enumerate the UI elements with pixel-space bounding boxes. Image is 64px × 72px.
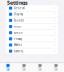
staticText: Wallet (14, 43, 22, 47)
staticText: > (54, 43, 56, 47)
staticText: Battery (14, 49, 23, 53)
staticText: Tab (6, 68, 10, 71)
staticText: > (54, 49, 56, 53)
staticText: Sounds (14, 19, 24, 22)
button[interactable]: Tab (16, 64, 32, 71)
staticText: > (54, 12, 56, 16)
staticText: > (54, 19, 56, 22)
button[interactable]: Tab (32, 64, 48, 71)
staticText: > (54, 25, 56, 28)
staticText: > (54, 37, 56, 41)
staticText: Display (14, 12, 23, 16)
staticText: Focus (14, 25, 21, 28)
button[interactable]: Tab (48, 64, 64, 71)
staticText: General (14, 6, 25, 10)
staticText: Tab (38, 68, 42, 71)
staticText: Tab (54, 68, 58, 71)
staticText: > (54, 31, 56, 34)
staticText: Privacy (14, 37, 22, 41)
staticText: Screen (14, 31, 23, 34)
staticText: Settings (7, 0, 28, 6)
button[interactable]: Tab (0, 64, 16, 71)
staticText: Tab (22, 68, 26, 71)
staticText: > (54, 6, 56, 10)
